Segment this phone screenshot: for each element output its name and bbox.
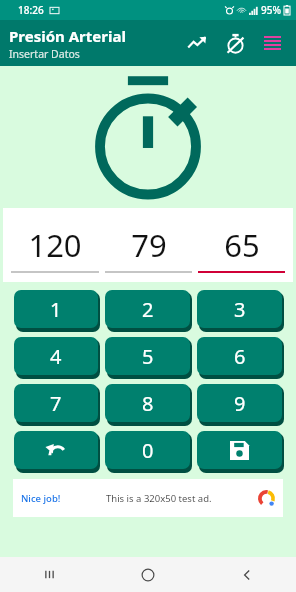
staticText: 79 (131, 224, 167, 266)
button[interactable]: Recientes (0, 557, 98, 592)
button[interactable]: Inicio (98, 557, 197, 592)
staticText: 120 (28, 224, 82, 266)
button[interactable]: 65 (198, 218, 285, 273)
staticText: 6 (234, 343, 246, 370)
button[interactable]: 7 (14, 384, 98, 422)
button[interactable]: 2 (105, 290, 190, 328)
staticText: 8 (142, 390, 154, 417)
button[interactable]: Deshacer (14, 431, 98, 469)
button[interactable]: Gráfica de tendencias (178, 24, 216, 62)
button[interactable]: Menú (254, 25, 290, 61)
button[interactable]: 0 (105, 431, 190, 469)
staticText: Nice job! (21, 492, 61, 505)
button[interactable]: Desactivar temporizador (216, 24, 254, 62)
button[interactable]: Nice job! (13, 479, 283, 517)
staticText: 9 (234, 390, 246, 417)
button[interactable]: 79 (105, 218, 192, 273)
button[interactable]: Atrás (197, 557, 296, 592)
staticText: 4 (50, 343, 62, 370)
staticText: 1 (50, 296, 62, 323)
staticText: 3 (234, 296, 246, 323)
button[interactable]: 5 (105, 337, 190, 375)
staticText: 95% (261, 3, 281, 17)
button[interactable]: 1 (14, 290, 98, 328)
button[interactable]: 120 (11, 218, 99, 273)
staticText: This is a 320x50 test ad. (106, 492, 212, 505)
button[interactable]: Guardar (197, 431, 282, 469)
staticText: 7 (50, 390, 62, 417)
staticText: 18:26 (18, 3, 44, 17)
staticText: 0 (142, 437, 154, 464)
staticText: Insertar Datos (9, 47, 80, 61)
button[interactable]: 6 (197, 337, 282, 375)
staticText: 65 (224, 224, 260, 266)
staticText: Presión Arterial (9, 26, 126, 46)
staticText: 5 (142, 343, 154, 370)
button[interactable]: 9 (197, 384, 282, 422)
button[interactable]: 4 (14, 337, 98, 375)
button[interactable]: 8 (105, 384, 190, 422)
staticText: 2 (142, 296, 154, 323)
button[interactable]: 3 (197, 290, 282, 328)
